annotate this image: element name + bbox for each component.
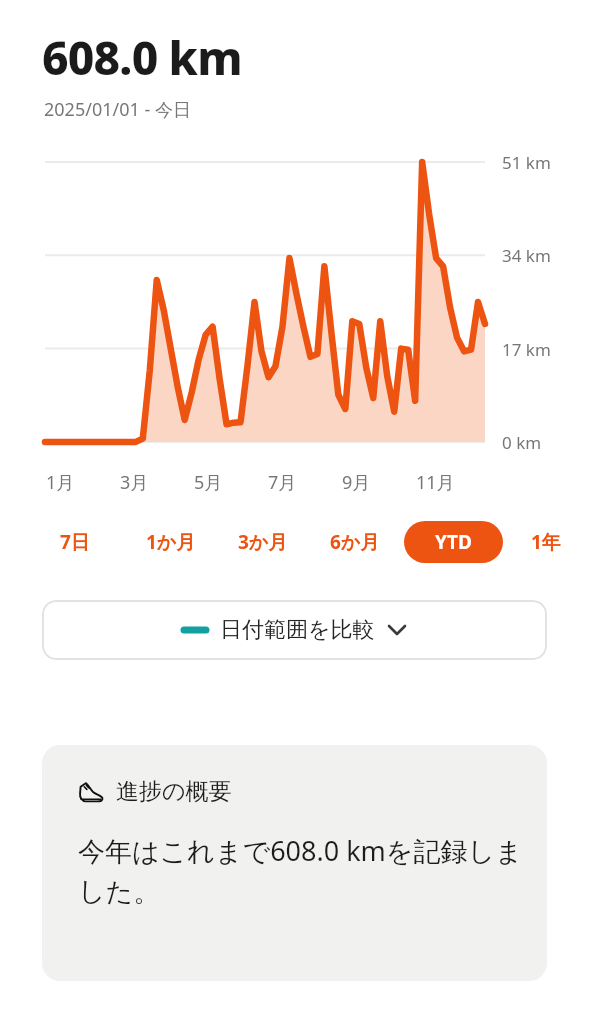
staticText: 1か月 [146,529,196,555]
staticText: 5月 [194,470,223,495]
staticText: 7日 [60,529,90,555]
staticText: 11月 [416,470,455,495]
button[interactable]: Running shoe [42,745,547,981]
staticText: 1年 [531,529,561,555]
staticText: 34 km [502,244,551,267]
button[interactable]: 日付範囲を比較 [42,600,547,660]
other: Running shoe [78,779,104,805]
staticText: YTD [435,529,472,555]
staticText: 3月 [120,470,149,495]
button[interactable]: 1年 [529,520,563,564]
button[interactable]: 6か月 [328,520,382,564]
button[interactable]: 1か月 [144,520,198,564]
staticText: 進捗の概要 [116,777,232,806]
staticText: 9月 [342,470,371,495]
staticText: 608.0 km [42,26,242,89]
button[interactable]: YTD [404,521,503,563]
staticText: 2025/01/01 - 今日 [44,97,191,122]
staticText: 日付範囲を比較 [220,616,375,644]
staticText: 0 km [502,431,542,454]
staticText: 6か月 [330,529,380,555]
button[interactable]: 3か月 [236,520,290,564]
staticText: 17 km [502,338,551,361]
staticText: 51 km [502,151,551,174]
staticText: 7月 [268,470,297,495]
staticText: 3か月 [238,529,288,555]
staticText: 今年はこれまで608.0 kmを記録しました。 [78,832,523,909]
staticText: 1月 [46,470,75,495]
button[interactable]: 7日 [58,520,92,564]
